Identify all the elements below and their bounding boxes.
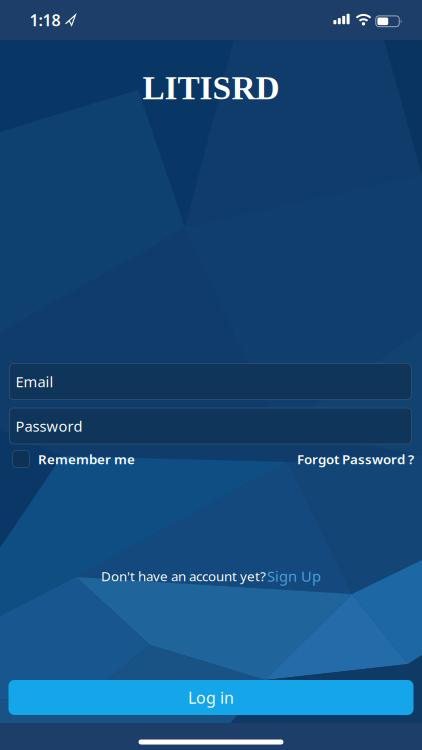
button[interactable]: Remember me — [12, 450, 135, 468]
staticText: Remember me — [38, 450, 135, 468]
staticText: Sign Up — [267, 566, 321, 586]
staticText: Forgot Password ? — [297, 450, 414, 468]
staticText: 1:18 — [29, 9, 60, 31]
button[interactable]: Sign Up — [267, 566, 321, 586]
button[interactable]: Password — [9, 407, 412, 444]
staticText: Log in — [188, 687, 234, 708]
staticText: Don't have an account yet? — [101, 567, 266, 585]
staticText: Email — [15, 372, 53, 391]
button[interactable]: Log in — [8, 680, 413, 715]
staticText: LITISRD — [142, 69, 279, 106]
button[interactable]: Forgot Password ? — [297, 450, 414, 468]
staticText: Password — [15, 416, 82, 436]
button[interactable]: Email — [9, 363, 412, 400]
